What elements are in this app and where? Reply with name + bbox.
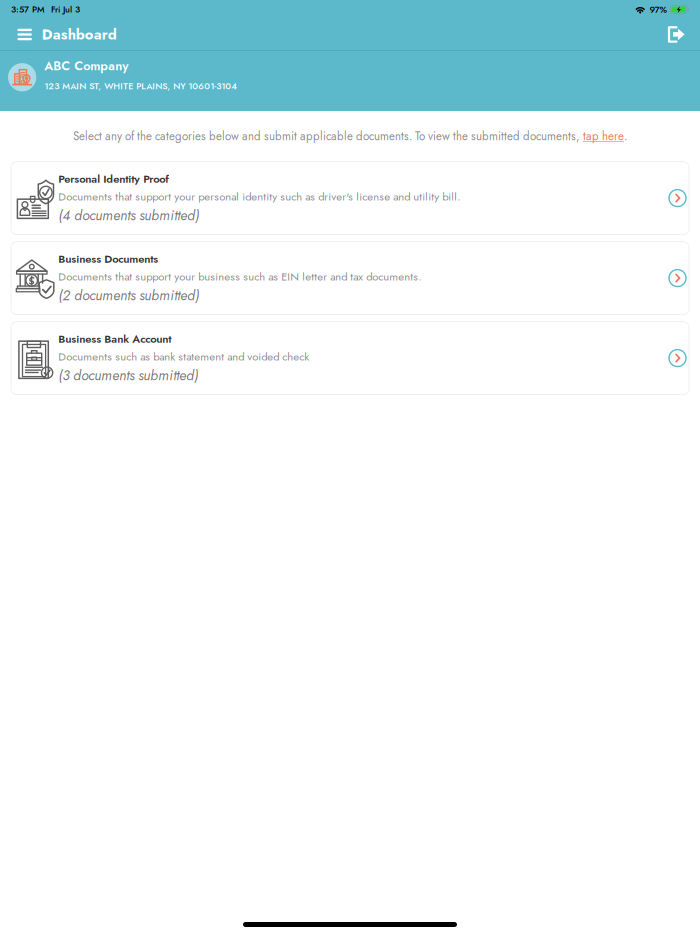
staticText: Documents that support your business suc… — [58, 268, 421, 285]
staticText: (2 documents submitted) — [58, 285, 199, 305]
staticText: Select any of the categories below and s… — [73, 128, 583, 145]
button[interactable]: Personal Identity Proof — [11, 162, 689, 235]
staticText: ABC Company — [44, 57, 128, 75]
button[interactable]: Log out — [661, 20, 692, 49]
staticText: . — [624, 128, 627, 145]
staticText: tap here — [583, 128, 624, 145]
staticText: Fri Jul 3 — [51, 3, 80, 16]
button[interactable]: Business Documents — [11, 242, 689, 315]
staticText: 123 MAIN ST, WHITE PLAINS, NY 10601-3104 — [44, 80, 237, 93]
staticText: 97% — [649, 3, 667, 16]
staticText: 3:57 PM — [11, 3, 45, 16]
staticText: Business Bank Account — [58, 331, 171, 347]
button[interactable]: Menu — [11, 22, 38, 47]
button[interactable]: Business Bank Account — [11, 322, 689, 395]
staticText: Personal Identity Proof — [58, 171, 169, 187]
staticText: Documents such as bank statement and voi… — [58, 348, 309, 365]
staticText: Dashboard — [42, 24, 117, 45]
staticText: Business Documents — [58, 251, 158, 267]
staticText: Documents that support your personal ide… — [58, 188, 460, 205]
button[interactable]: tap here — [583, 128, 624, 145]
staticText: (4 documents submitted) — [58, 205, 199, 225]
staticText: (3 documents submitted) — [58, 365, 198, 385]
